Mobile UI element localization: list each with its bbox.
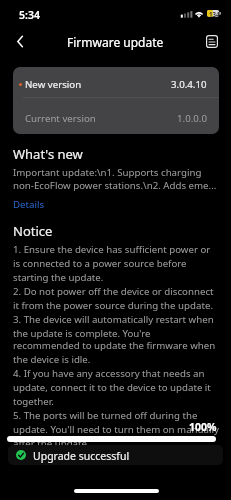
staticText: 3.0.4.10 [171,78,207,91]
button[interactable]: Update history [199,28,225,54]
staticText: 1. Ensure the device has sufficient powe… [13,243,219,340]
button[interactable]: Details [13,198,45,211]
staticText: New version [25,78,82,91]
button[interactable]: Back [6,28,33,55]
staticText: recommended to update the firmware when … [13,339,219,450]
staticText: Important update:\n1. Supports charging … [13,166,219,192]
staticText: 100% [189,420,217,434]
staticText: What's new [13,145,83,163]
button[interactable]: New version [13,67,219,97]
staticText: 134 [209,10,220,18]
staticText: Firmware update [67,34,164,50]
staticText: 1.0.0.0 [177,112,207,125]
staticText: 5:34 [19,8,40,22]
button[interactable]: Current version [13,98,219,133]
staticText: Upgrade successful [33,449,130,463]
staticText: Details [13,198,45,211]
staticText: Current version [25,112,96,125]
staticText: Notice [13,222,53,240]
